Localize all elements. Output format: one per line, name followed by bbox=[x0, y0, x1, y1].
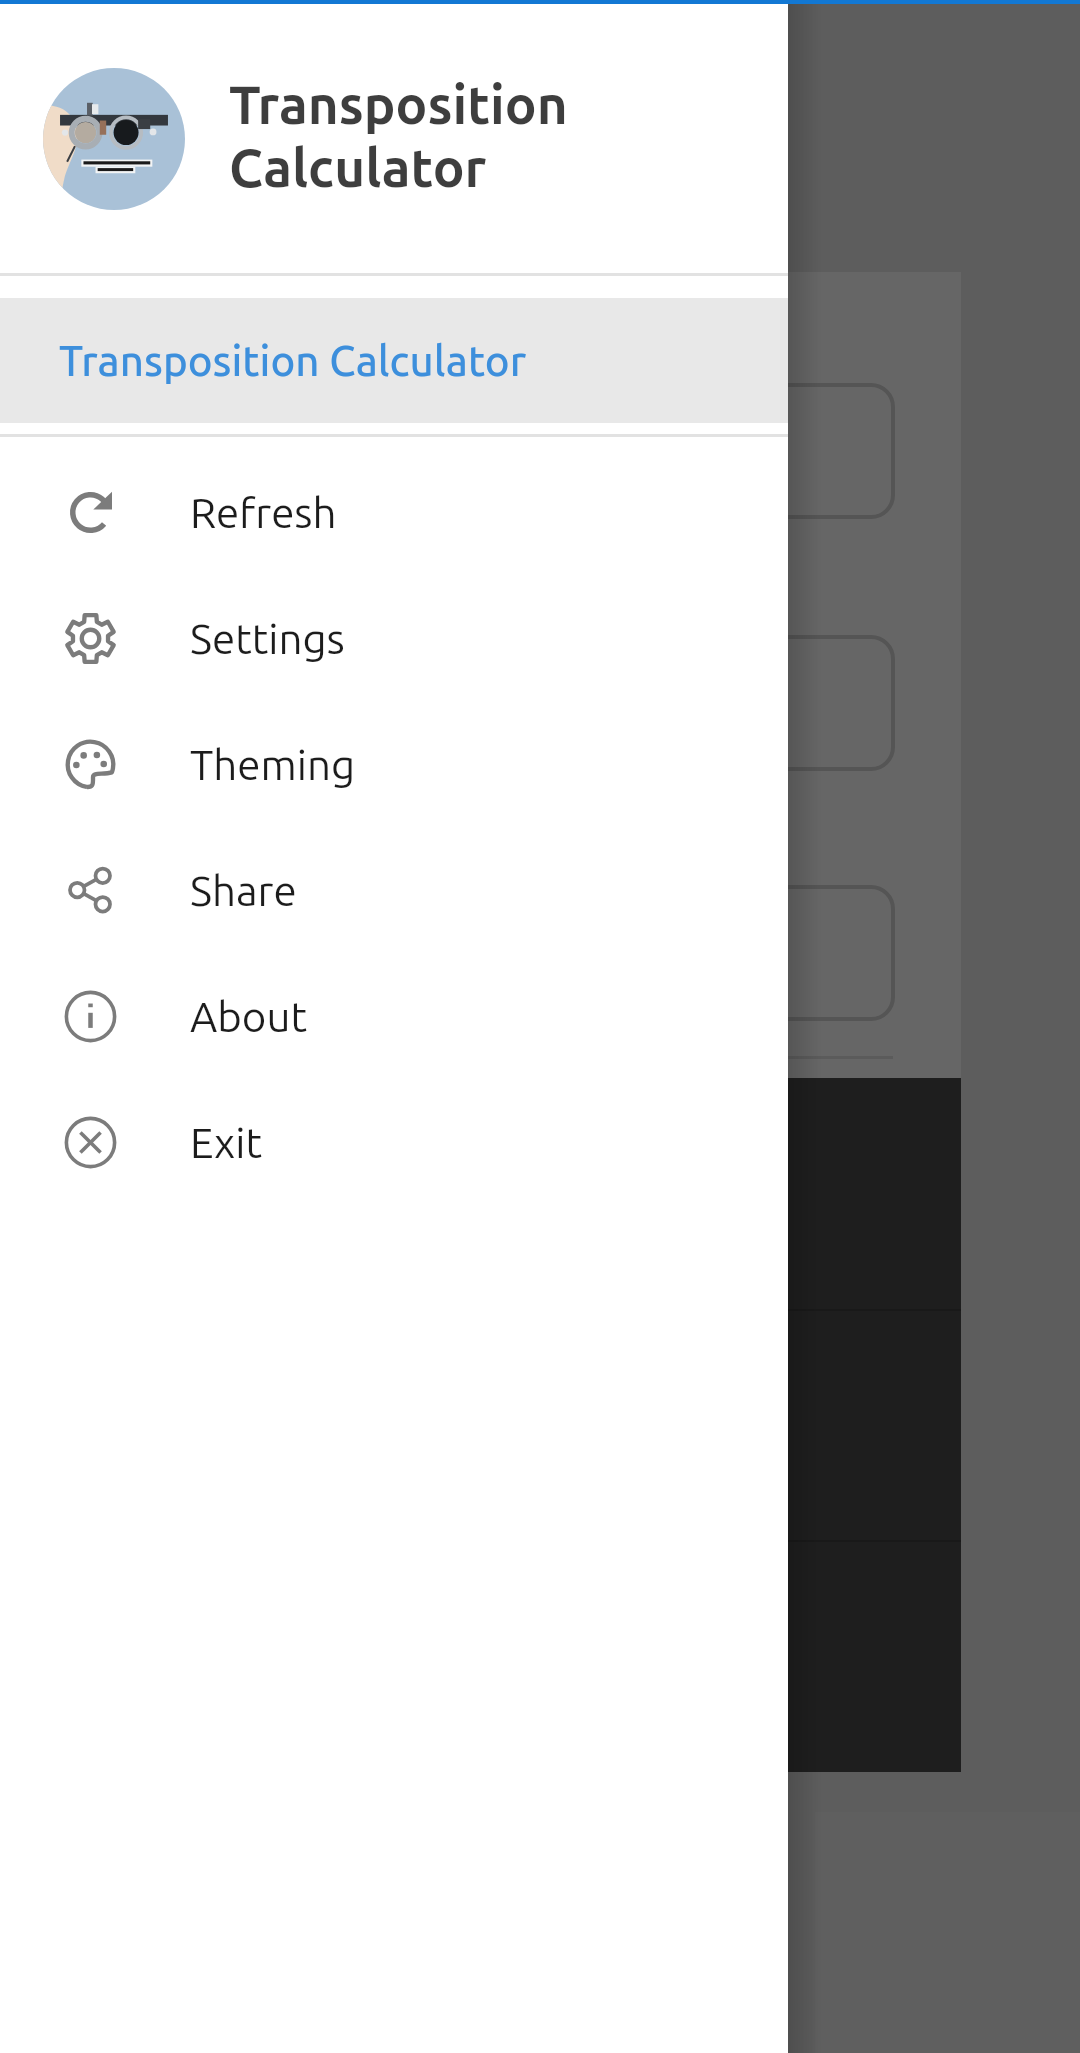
staticText: Exit bbox=[190, 1119, 262, 1166]
button[interactable]: About bbox=[0, 953, 788, 1079]
staticText: Transposition Calculator bbox=[59, 337, 527, 384]
button[interactable]: Transposition Calculator bbox=[0, 298, 788, 423]
button[interactable]: Transposition Calculator bbox=[0, 5, 788, 273]
button[interactable]: Close navigation drawer bbox=[0, 0, 1080, 2053]
button[interactable]: Theming bbox=[0, 701, 788, 827]
staticText: Transposition Calculator bbox=[229, 75, 568, 197]
button[interactable]: Settings bbox=[0, 575, 788, 701]
staticText: Share bbox=[190, 867, 297, 914]
button[interactable]: Exit bbox=[0, 1079, 788, 1205]
staticText: Refresh bbox=[190, 489, 337, 536]
button[interactable]: Share bbox=[0, 827, 788, 953]
staticText: Settings bbox=[190, 615, 345, 662]
staticText: About bbox=[190, 993, 307, 1040]
staticText: Theming bbox=[190, 741, 356, 788]
button[interactable]: Refresh bbox=[0, 449, 788, 575]
